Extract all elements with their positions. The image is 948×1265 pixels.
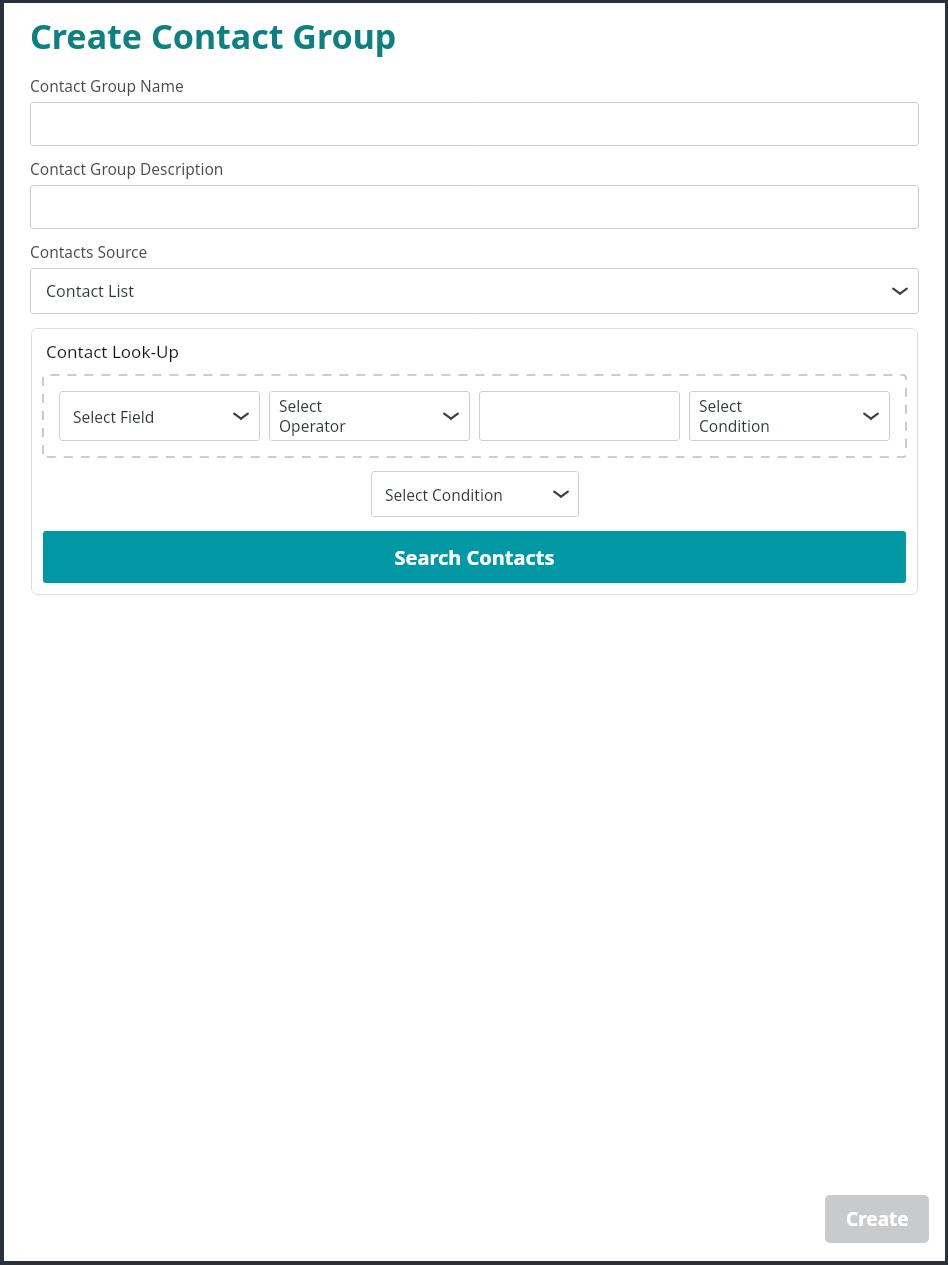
staticText: Select Operator <box>279 395 346 437</box>
staticText: Create <box>846 1206 909 1232</box>
button[interactable]: Search Contacts <box>43 531 906 583</box>
button[interactable] <box>479 391 680 441</box>
staticText: Select Condition <box>385 484 503 505</box>
button[interactable]: Contact List <box>30 268 919 314</box>
staticText: Select Condition <box>699 395 770 437</box>
staticText: Contacts Source <box>30 241 148 262</box>
button[interactable]: Select Operator <box>269 391 470 441</box>
staticText: Select Field <box>73 406 155 427</box>
button[interactable]: Select Condition <box>371 471 579 517</box>
staticText: Contact Group Description <box>30 158 224 179</box>
button[interactable] <box>30 102 919 146</box>
staticText: Create Contact Group <box>30 13 397 59</box>
staticText: Contact Group Name <box>30 75 184 96</box>
button[interactable]: Select Field <box>59 391 260 441</box>
staticText: Contact List <box>46 280 135 302</box>
button[interactable]: Select Condition <box>689 391 890 441</box>
button[interactable]: Create <box>825 1195 929 1243</box>
staticText: Contact Look-Up <box>46 340 179 363</box>
staticText: Search Contacts <box>394 544 555 571</box>
button[interactable] <box>30 185 919 229</box>
